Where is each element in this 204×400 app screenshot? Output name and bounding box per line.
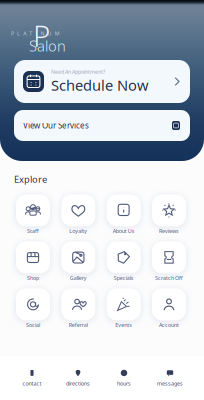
staticText: P	[33, 16, 50, 55]
staticText: Specials	[114, 274, 134, 281]
staticText: About Us	[113, 227, 135, 234]
button[interactable]: directions	[55, 363, 101, 393]
staticText: Loyalty	[69, 227, 87, 234]
staticText: Scratch Off	[155, 274, 183, 281]
button[interactable]: Referral	[61, 288, 95, 329]
button[interactable]: Scratch Off	[152, 241, 186, 282]
button[interactable]: View Our Services	[14, 110, 190, 141]
button[interactable]: About Us	[107, 194, 141, 235]
staticText: contact	[22, 380, 41, 387]
staticText: directions	[66, 380, 90, 387]
staticText: Events	[115, 321, 132, 328]
button[interactable]: Social	[16, 288, 50, 329]
button[interactable]: Need An Appointment?	[14, 60, 190, 103]
button[interactable]: Account	[152, 288, 186, 329]
button[interactable]: Events	[107, 288, 141, 329]
staticText: Referral	[69, 321, 88, 328]
staticText: Salon	[29, 36, 66, 55]
staticText: Gallery	[70, 274, 87, 281]
staticText: messages	[157, 380, 183, 387]
staticText: Explore	[14, 173, 47, 185]
staticText: hours	[117, 380, 131, 387]
staticText: Reviews	[159, 227, 179, 234]
button[interactable]: contact	[9, 363, 55, 393]
button[interactable]: Loyalty	[61, 194, 95, 235]
staticText: PLATINUM	[11, 30, 60, 37]
button[interactable]: Specials	[107, 241, 141, 282]
staticText: Schedule Now	[51, 75, 149, 95]
button[interactable]: Staff	[16, 194, 50, 235]
staticText: Staff	[27, 227, 39, 234]
staticText: Need An Appointment?	[51, 68, 105, 75]
button[interactable]: messages	[147, 363, 193, 393]
staticText: Social	[26, 321, 40, 328]
button[interactable]: Shop	[16, 241, 50, 282]
button[interactable]: Gallery	[61, 241, 95, 282]
staticText: Shop	[27, 274, 39, 281]
staticText: Account	[159, 321, 179, 328]
button[interactable]: Reviews	[152, 194, 186, 235]
staticText: View Our Services	[23, 120, 89, 131]
button[interactable]: hours	[101, 363, 147, 393]
